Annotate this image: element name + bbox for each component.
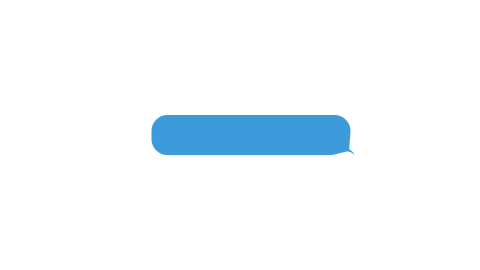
button[interactable]: Message xyxy=(151,115,355,155)
